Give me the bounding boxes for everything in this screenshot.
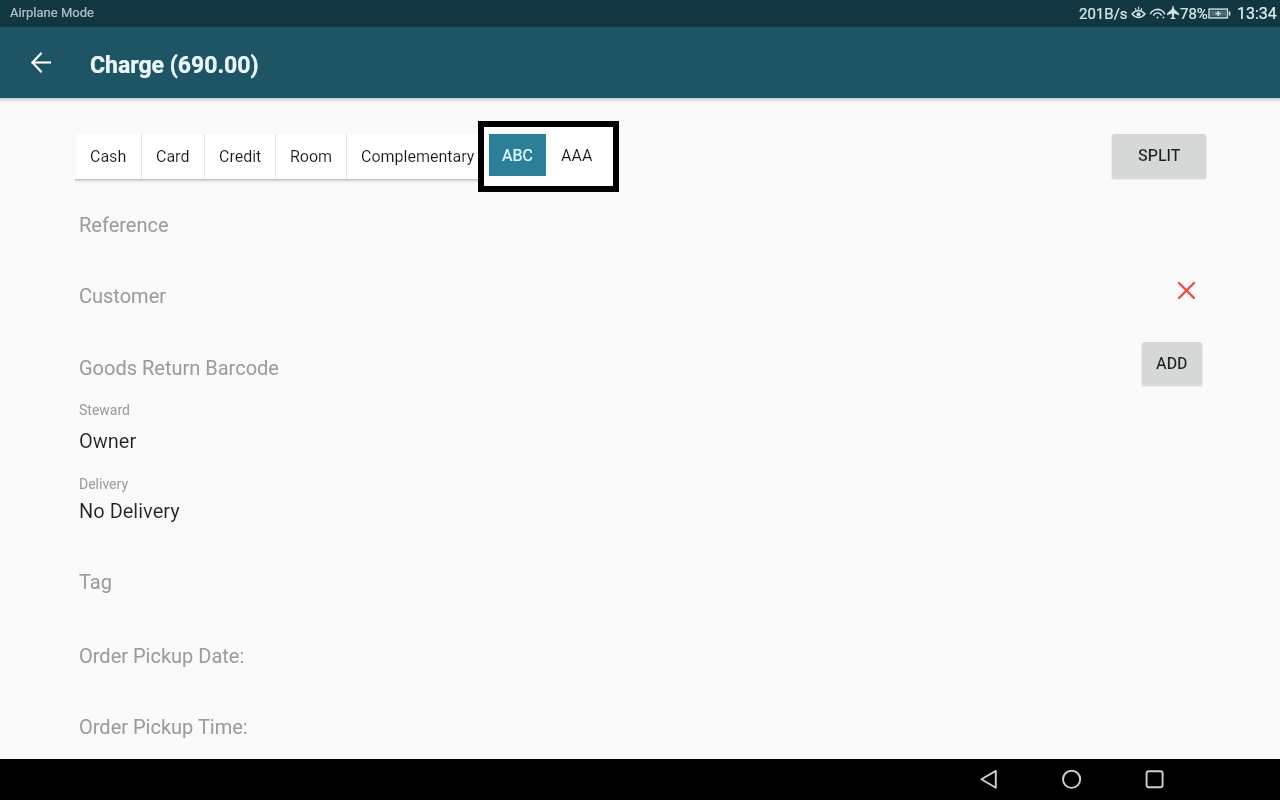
button[interactable]: Order Pickup Time: <box>76 692 1204 759</box>
staticText: Tag <box>79 570 112 593</box>
staticText: ADD <box>1156 354 1188 373</box>
staticText: Card <box>156 147 190 166</box>
staticText: AAA <box>561 146 593 165</box>
button[interactable]: Clear customer <box>1172 276 1200 304</box>
staticText: Charge (690.00) <box>90 52 259 79</box>
button[interactable]: Steward <box>76 392 1204 464</box>
staticText: 13:34 <box>1237 4 1277 23</box>
staticText: Goods Return Barcode <box>79 356 279 379</box>
button[interactable]: Goods Return Barcode <box>76 328 1136 388</box>
staticText: Complementary <box>361 147 475 166</box>
button[interactable]: AAA <box>546 134 607 179</box>
button[interactable]: Credit <box>205 134 275 179</box>
button[interactable]: Room <box>276 134 346 179</box>
staticText: Order Pickup Date: <box>79 644 245 667</box>
staticText: 201B/s <box>1079 5 1128 23</box>
button[interactable]: Tag <box>76 548 1204 616</box>
button[interactable]: Cash <box>76 134 141 179</box>
staticText: Delivery <box>79 476 129 492</box>
staticText: SPLIT <box>1138 146 1181 165</box>
staticText: Credit <box>219 147 262 166</box>
button[interactable]: Card <box>142 134 204 179</box>
button[interactable]: Keyboard mode <box>478 121 619 192</box>
staticText: Steward <box>79 402 130 418</box>
button[interactable]: Complementary <box>347 134 489 179</box>
button[interactable]: Reference <box>76 196 1204 262</box>
button[interactable]: Home <box>1051 759 1091 799</box>
button[interactable]: ABC <box>489 134 546 176</box>
staticText: Cash <box>90 147 127 166</box>
button[interactable]: ABC <box>489 134 546 179</box>
button[interactable]: ADD <box>1142 342 1202 384</box>
staticText: No Delivery <box>79 499 180 522</box>
staticText: Order Pickup Time: <box>79 715 248 738</box>
staticText: AAA <box>561 147 593 166</box>
button[interactable]: Order Pickup Date: <box>76 620 1204 688</box>
staticText: 78% <box>1180 5 1208 23</box>
staticText: Reference <box>79 213 169 236</box>
button[interactable]: Back <box>968 759 1008 799</box>
staticText: Room <box>290 147 333 166</box>
button[interactable]: Delivery <box>76 466 1204 538</box>
button[interactable]: Recent apps <box>1134 759 1174 799</box>
button[interactable]: AAA <box>546 134 607 176</box>
staticText: Owner <box>79 429 137 452</box>
staticText: ABC <box>502 147 533 166</box>
button[interactable]: Customer <box>76 262 1166 328</box>
staticText: Customer <box>79 284 167 307</box>
staticText: ABC <box>502 146 533 165</box>
button[interactable]: Back <box>18 39 65 86</box>
staticText: Airplane Mode <box>10 5 94 20</box>
button[interactable]: SPLIT <box>1112 134 1206 177</box>
